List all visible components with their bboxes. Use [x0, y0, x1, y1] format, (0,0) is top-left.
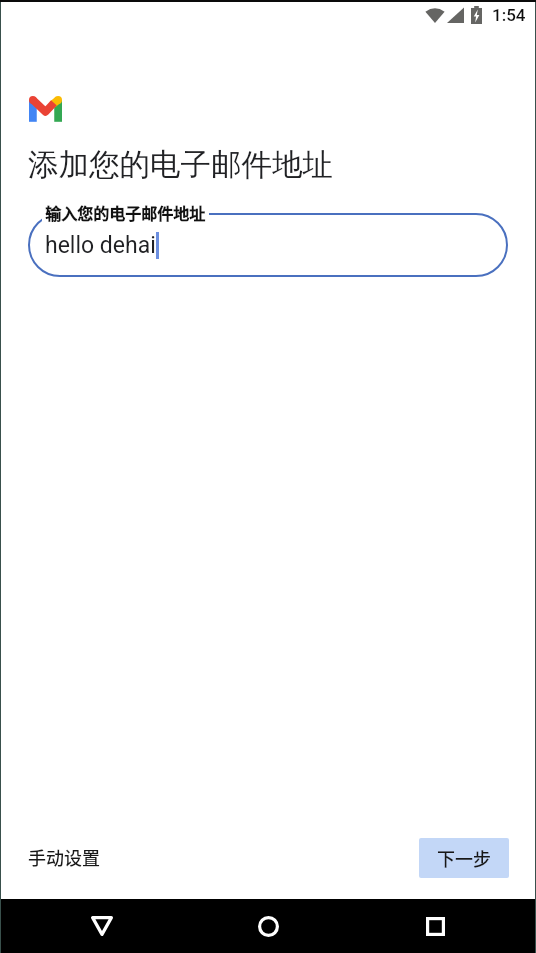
staticText: 添加您的电子邮件地址: [28, 146, 333, 184]
staticText: hello dehai: [45, 232, 156, 259]
button[interactable]: Back: [74, 899, 129, 953]
button[interactable]: 下一步: [419, 838, 509, 878]
staticText: 1:54: [492, 5, 526, 25]
staticText: 下一步: [437, 845, 491, 871]
button[interactable]: 手动设置: [28, 844, 100, 870]
button[interactable]: hello dehai: [28, 213, 508, 277]
button[interactable]: Recent apps: [408, 899, 463, 953]
staticText: 手动设置: [28, 844, 100, 870]
staticText: 输入您的电子邮件地址: [45, 201, 206, 224]
button[interactable]: Home: [241, 899, 296, 953]
